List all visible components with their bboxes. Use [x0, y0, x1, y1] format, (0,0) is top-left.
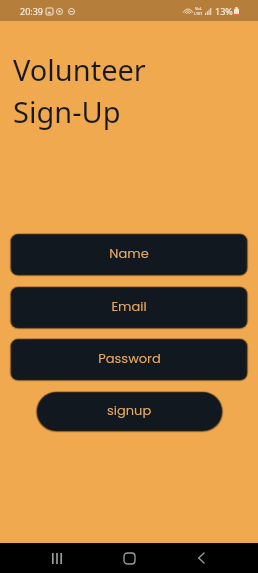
button[interactable]: Home [93, 543, 165, 573]
button[interactable]: Name [12, 235, 246, 274]
staticText: VoL [195, 6, 202, 11]
staticText: 20:39 [20, 5, 44, 17]
staticText: LTE1 [194, 11, 203, 16]
staticText: 13% [215, 5, 233, 17]
button[interactable]: Email [12, 288, 246, 327]
staticText: signup [107, 401, 152, 419]
staticText: Volunteer Sign-Up [13, 50, 146, 131]
button[interactable]: Back [165, 543, 237, 573]
button[interactable]: Password [12, 340, 246, 379]
button[interactable]: signup [38, 393, 221, 430]
staticText: Email [111, 297, 147, 315]
staticText: Password [98, 349, 161, 367]
staticText: Name [109, 244, 149, 262]
button[interactable]: Recent apps [21, 543, 93, 573]
